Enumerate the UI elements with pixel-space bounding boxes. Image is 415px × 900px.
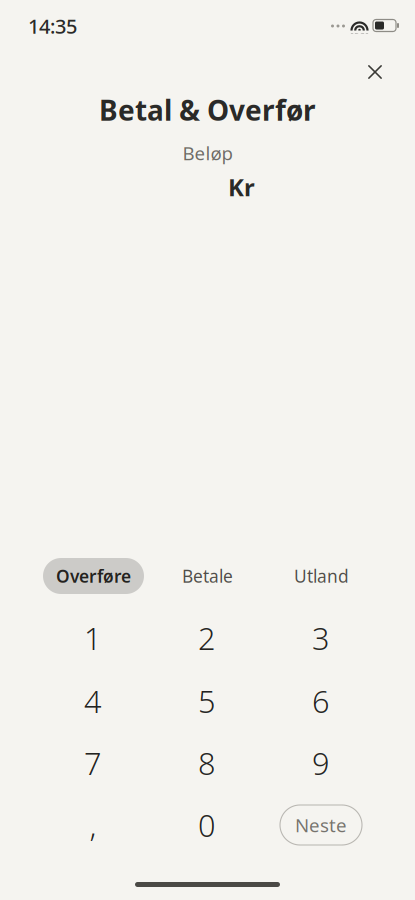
staticText: 0 <box>198 805 216 845</box>
staticText: 5 <box>198 681 216 721</box>
staticText: 6 <box>312 681 330 721</box>
staticText: 3 <box>312 618 330 658</box>
staticText: Kr <box>228 171 255 203</box>
button[interactable]: , <box>38 797 148 853</box>
button[interactable]: 1 <box>38 610 148 666</box>
button[interactable]: 9 <box>266 735 376 791</box>
staticText: 8 <box>198 743 216 783</box>
button[interactable]: 0 <box>152 797 262 853</box>
button[interactable]: 7 <box>38 735 148 791</box>
button[interactable]: Neste <box>280 805 362 845</box>
button[interactable]: 8 <box>152 735 262 791</box>
staticText: 14:35 <box>28 13 77 39</box>
staticText: Overføre <box>56 564 131 587</box>
button[interactable]: 2 <box>152 610 262 666</box>
button[interactable]: 4 <box>38 673 148 729</box>
staticText: 7 <box>84 743 102 783</box>
staticText: 9 <box>312 743 330 783</box>
staticText: Betal & Overfør <box>99 91 316 129</box>
button[interactable]: Lukk <box>353 50 397 94</box>
button[interactable]: Betale <box>157 558 258 594</box>
staticText: Utland <box>294 564 349 587</box>
staticText: 2 <box>198 618 216 658</box>
staticText: Betale <box>182 564 233 587</box>
staticText: 4 <box>84 681 102 721</box>
button[interactable]: Overføre <box>43 558 144 594</box>
button[interactable]: 6 <box>266 673 376 729</box>
staticText: Beløp <box>182 141 232 165</box>
button[interactable]: Utland <box>271 558 372 594</box>
button[interactable]: 3 <box>266 610 376 666</box>
button[interactable]: 5 <box>152 673 262 729</box>
staticText: Neste <box>295 813 347 837</box>
staticText: , <box>89 805 96 845</box>
staticText: 1 <box>84 618 102 658</box>
